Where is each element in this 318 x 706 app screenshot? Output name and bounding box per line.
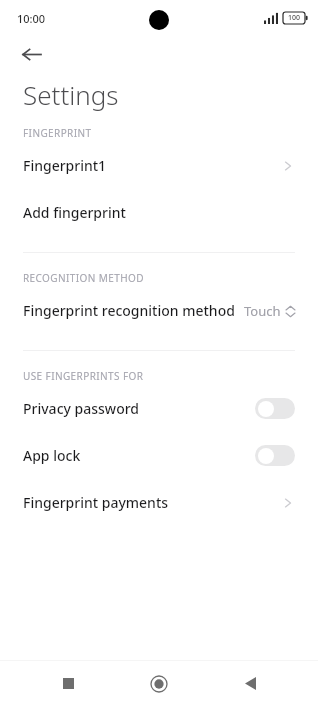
staticText: 10:00	[17, 11, 46, 26]
button[interactable]: Back	[12, 36, 50, 72]
staticText: Fingerprint1	[23, 156, 107, 175]
button[interactable]: Back	[227, 661, 273, 706]
button[interactable]: Home	[136, 661, 182, 706]
button[interactable]: Add fingerprint	[0, 189, 318, 236]
staticText: Touch	[244, 302, 281, 320]
staticText: 100	[288, 13, 301, 23]
staticText: Fingerprint payments	[23, 493, 169, 512]
button[interactable]: App lock	[0, 432, 318, 479]
button[interactable]: Fingerprint payments	[0, 479, 318, 526]
staticText: RECOGNITION METHOD	[23, 271, 318, 285]
staticText: Privacy password	[23, 399, 140, 418]
button[interactable]: Fingerprint recognition method	[0, 287, 318, 334]
button[interactable]: Recents	[45, 661, 91, 706]
button[interactable]: Toggle Privacy password	[255, 398, 295, 419]
button[interactable]: Toggle App lock	[255, 445, 295, 466]
button[interactable]: Privacy password	[0, 385, 318, 432]
staticText: USE FINGERPRINTS FOR	[23, 369, 318, 383]
staticText: App lock	[23, 446, 81, 465]
staticText: Add fingerprint	[23, 203, 126, 222]
staticText: FINGERPRINT	[23, 126, 318, 140]
staticText: Settings	[23, 77, 119, 112]
staticText: Fingerprint recognition method	[23, 301, 235, 320]
button[interactable]: Fingerprint1	[0, 142, 318, 189]
